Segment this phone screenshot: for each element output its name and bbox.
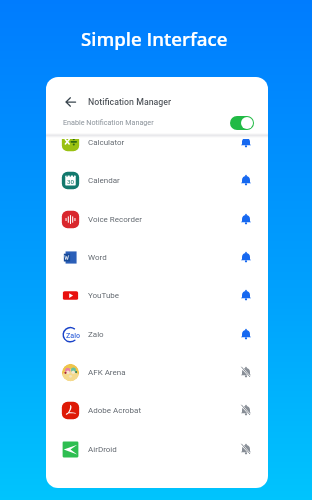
button[interactable]: AirDroid: [46, 430, 268, 468]
staticText: Notification Manager: [88, 97, 172, 107]
button[interactable]: Notifications on for Calculator: [240, 139, 252, 148]
staticText: Word: [88, 253, 107, 262]
button[interactable]: Enable Notification Manager: [46, 111, 268, 134]
staticText: Voice Recorder: [88, 215, 142, 224]
button[interactable]: AFK Arena: [46, 353, 268, 391]
button[interactable]: Notifications off for AirDroid: [240, 443, 252, 455]
button[interactable]: Back: [62, 93, 80, 111]
button[interactable]: Notifications off for Adobe Acrobat: [240, 404, 252, 416]
staticText: Calendar: [88, 176, 120, 185]
button[interactable]: Notifications on for Zalo: [240, 328, 252, 340]
button[interactable]: Calculator: [46, 139, 268, 161]
button[interactable]: Notifications on for Calendar: [240, 174, 252, 186]
staticText: Adobe Acrobat: [88, 406, 142, 415]
button[interactable]: YouTube: [46, 276, 268, 314]
button[interactable]: Word: [46, 238, 268, 276]
staticText: Zalo: [88, 330, 104, 339]
button[interactable]: Notifications on for Voice Recorder: [240, 213, 252, 225]
button[interactable]: Voice Recorder: [46, 200, 268, 238]
button[interactable]: Zalo: [46, 315, 268, 353]
staticText: YouTube: [88, 291, 120, 300]
staticText: Enable Notification Manager: [63, 118, 154, 126]
staticText: AirDroid: [88, 445, 117, 454]
button[interactable]: Adobe Acrobat: [46, 391, 268, 429]
staticText: 30: [67, 178, 75, 185]
button[interactable]: Notifications on for Word: [240, 251, 252, 263]
button[interactable]: 30: [46, 161, 268, 199]
staticText: Zalo: [66, 331, 81, 339]
button[interactable]: Notifications off for AFK Arena: [240, 366, 252, 378]
staticText: Calculator: [88, 139, 125, 147]
button[interactable]: Notifications on for YouTube: [240, 289, 252, 301]
staticText: Simple Interface: [81, 26, 228, 51]
staticText: AFK Arena: [88, 368, 126, 377]
